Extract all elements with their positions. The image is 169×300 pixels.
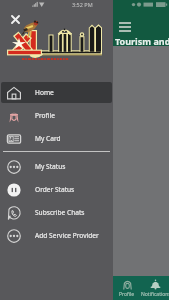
- staticText: Order Status: [35, 185, 75, 194]
- staticText: Tourism and leisure: [115, 35, 169, 47]
- button[interactable]: Subscribe Chats: [1, 202, 112, 223]
- button[interactable]: Profile: [1, 105, 112, 126]
- staticText: 3:52 PM: [72, 1, 93, 8]
- staticText: Profile: [35, 111, 55, 120]
- staticText: Home: [35, 88, 54, 97]
- button[interactable]: Open navigation menu: [116, 15, 134, 33]
- button[interactable]: My Status: [1, 156, 112, 177]
- button[interactable]: Home: [1, 82, 112, 103]
- button[interactable]: Close drawer: [8, 12, 23, 27]
- staticText: Profile: [119, 291, 135, 298]
- staticText: My Card: [35, 134, 61, 143]
- staticText: Subscribe Chats: [35, 208, 85, 217]
- button[interactable]: Add Service Provider: [1, 225, 112, 246]
- staticText: My Status: [35, 162, 66, 171]
- button[interactable]: Order Status: [1, 179, 112, 200]
- staticText: Notifications: [141, 291, 169, 298]
- staticText: Add Service Provider: [35, 231, 99, 240]
- button[interactable]: My Card: [1, 128, 112, 149]
- button[interactable]: Profile: [113, 276, 141, 300]
- button[interactable]: Notifications: [141, 276, 169, 300]
